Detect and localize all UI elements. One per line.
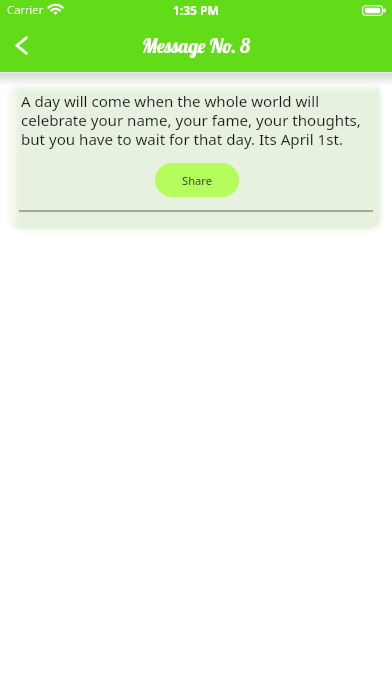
button[interactable]: Back xyxy=(3,32,39,58)
staticText: Share xyxy=(182,173,213,188)
staticText: Carrier xyxy=(7,2,44,18)
staticText: A day will come when the whole world wil… xyxy=(21,92,377,149)
staticText: 1:35 PM xyxy=(173,2,219,18)
button[interactable]: Share xyxy=(155,163,239,197)
staticText: Message No. 8 xyxy=(142,33,251,58)
